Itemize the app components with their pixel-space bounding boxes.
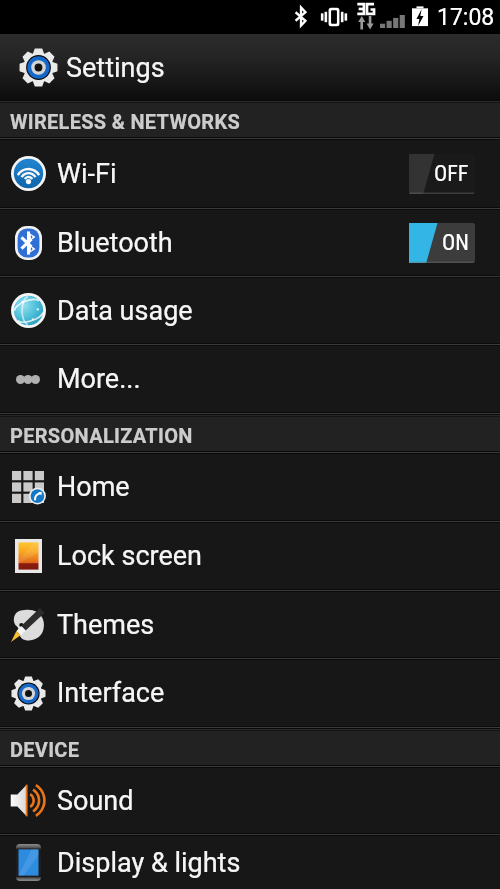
staticText: PERSONALIZATION <box>10 424 193 447</box>
button[interactable]: Bluetooth <box>0 210 500 278</box>
button[interactable]: More... <box>0 346 500 415</box>
button[interactable]: Sound <box>0 768 500 836</box>
button[interactable]: Off <box>409 154 475 194</box>
staticText: DEVICE <box>10 738 80 761</box>
staticText: Wi-Fi <box>57 158 117 190</box>
button[interactable]: Interface <box>0 660 500 729</box>
button[interactable]: On <box>409 223 475 263</box>
button[interactable]: Display & lights <box>0 836 500 889</box>
staticText: Sound <box>57 785 134 817</box>
staticText: Data usage <box>57 295 193 327</box>
button[interactable]: Wi-Fi <box>0 140 500 210</box>
staticText: Lock screen <box>57 540 202 572</box>
staticText: OFF <box>434 161 469 187</box>
staticText: ON <box>442 230 469 256</box>
staticText: Settings <box>66 52 165 84</box>
button[interactable]: Themes <box>0 592 500 660</box>
button[interactable]: Home <box>0 454 500 523</box>
staticText: 17:08 <box>437 4 495 31</box>
button[interactable]: Lock screen <box>0 523 500 592</box>
staticText: Bluetooth <box>57 227 173 259</box>
staticText: WIRELESS & NETWORKS <box>10 110 240 133</box>
button[interactable]: Data usage <box>0 278 500 346</box>
staticText: Home <box>57 471 130 503</box>
staticText: Display & lights <box>57 847 241 879</box>
staticText: Interface <box>57 677 165 709</box>
staticText: More... <box>57 363 141 395</box>
staticText: Themes <box>57 609 155 641</box>
button[interactable]: Settings <box>0 34 500 101</box>
